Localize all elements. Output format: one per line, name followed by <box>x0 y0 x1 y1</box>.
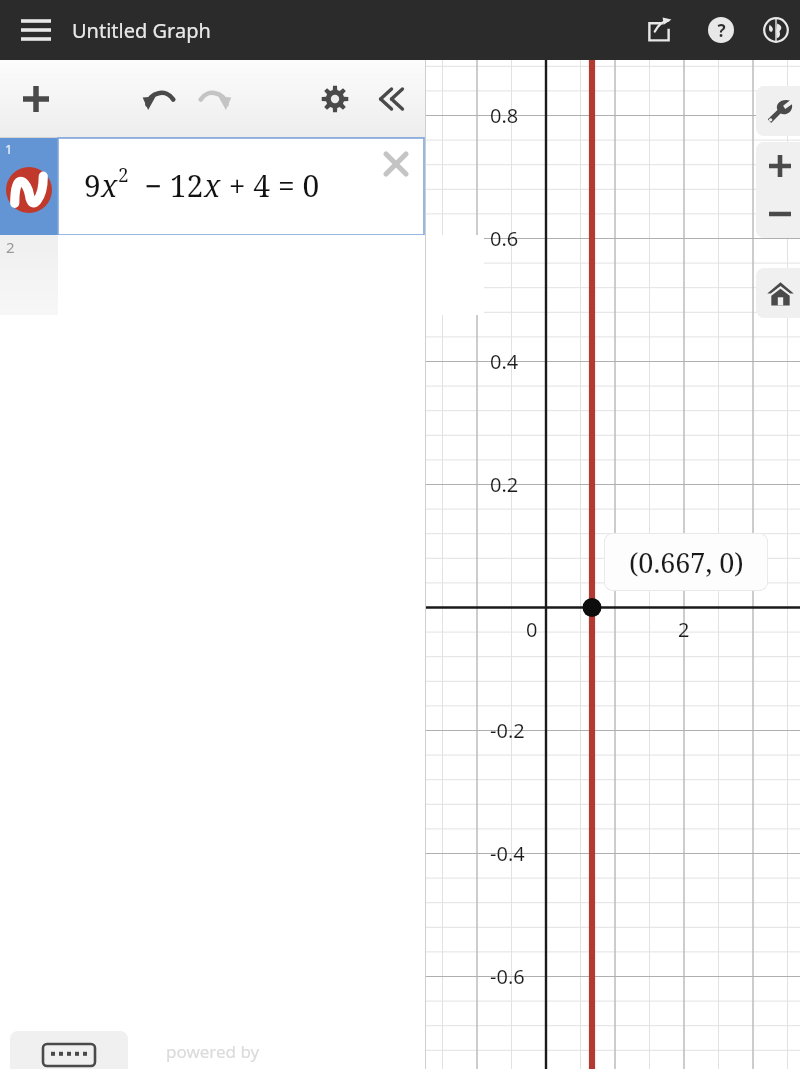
staticText: 0.4 <box>490 348 519 375</box>
staticText: -0.4 <box>490 840 525 867</box>
button[interactable]: Add expression <box>8 60 64 138</box>
button[interactable]: Delete expression <box>376 144 416 184</box>
button[interactable]: Redo <box>188 60 242 138</box>
staticText: 9 <box>84 165 101 206</box>
staticText: 0.8 <box>490 102 519 129</box>
button[interactable]: Reset zoom <box>756 268 800 318</box>
staticText: − 12 <box>129 165 204 206</box>
staticText: -0.6 <box>490 963 525 990</box>
button[interactable]: Language <box>752 0 800 60</box>
button[interactable]: Expression 1 color <box>0 138 58 235</box>
staticText: 0.6 <box>490 225 519 252</box>
staticText: 2 <box>6 237 15 257</box>
staticText: (0.667, 0) <box>629 544 744 581</box>
button[interactable]: Undo <box>132 60 186 138</box>
staticText: ? <box>717 19 726 42</box>
button[interactable]: Settings <box>308 60 362 138</box>
staticText: x <box>204 165 221 206</box>
staticText: + 4 = 0 <box>221 165 320 206</box>
button[interactable]: (0.667, 0) <box>604 533 768 591</box>
staticText: Untitled Graph <box>72 17 211 44</box>
button[interactable]: Zoom out <box>756 190 800 238</box>
staticText: 2 <box>678 616 690 643</box>
button[interactable]: Keyboard <box>10 1031 128 1069</box>
button[interactable]: Share <box>632 0 686 60</box>
button[interactable]: Zoom in <box>756 142 800 190</box>
staticText: x <box>101 165 118 206</box>
staticText: 1 <box>5 140 13 158</box>
button[interactable]: 9 <box>58 138 424 235</box>
button[interactable]: Collapse panel <box>364 60 418 138</box>
staticText: 2 <box>118 162 129 188</box>
button[interactable]: Help <box>694 0 748 60</box>
button[interactable]: Graph settings <box>756 86 800 136</box>
staticText: 0 <box>526 616 538 643</box>
staticText: powered by <box>166 1040 260 1063</box>
button[interactable]: Menu <box>12 0 60 60</box>
staticText: 0.2 <box>490 471 519 498</box>
button[interactable]: Expression 2 <box>0 235 58 315</box>
staticText: -0.2 <box>490 717 525 744</box>
